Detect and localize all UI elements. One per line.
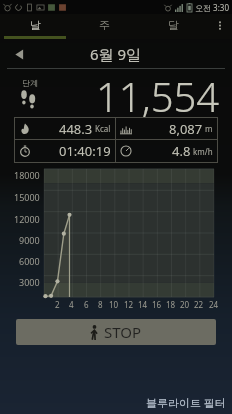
button[interactable]: 01:40:19	[15, 140, 115, 162]
staticText: STOP	[104, 322, 142, 342]
button[interactable]: Previous day	[6, 41, 32, 67]
staticText: 10	[109, 299, 119, 310]
staticText: 9000	[19, 234, 40, 246]
staticText: 11,554	[96, 69, 220, 117]
staticText: 01:40:19	[59, 142, 111, 160]
button[interactable]: 날	[0, 14, 70, 36]
staticText: 6	[84, 299, 89, 310]
staticText: 18	[166, 299, 176, 310]
staticText: Kcal	[95, 123, 111, 134]
staticText: 3000	[19, 276, 40, 288]
staticText: 24	[209, 299, 219, 310]
staticText: 블루라이트 필터	[146, 395, 226, 410]
staticText: 16	[152, 299, 162, 310]
button[interactable]: STOP	[16, 319, 216, 345]
staticText: 4.8	[172, 142, 191, 160]
staticText: 2	[55, 299, 60, 310]
staticText: 단계	[22, 78, 38, 88]
staticText: 주	[99, 18, 110, 32]
staticText: 12000	[14, 213, 40, 225]
staticText: 12	[124, 299, 134, 310]
staticText: 22	[194, 299, 204, 310]
staticText: 날	[30, 18, 41, 32]
button[interactable]: 4.8	[116, 140, 217, 162]
button[interactable]: 주	[70, 14, 139, 36]
staticText: 20	[180, 299, 190, 310]
staticText: m	[205, 123, 213, 134]
staticText: 4	[69, 299, 74, 310]
staticText: km/h	[193, 146, 213, 157]
staticText: 8,087	[169, 120, 203, 138]
staticText: 18000	[14, 169, 40, 181]
staticText: 14	[138, 299, 148, 310]
staticText: 8	[98, 299, 103, 310]
staticText: 6000	[19, 255, 40, 267]
button[interactable]: More options	[208, 14, 232, 36]
staticText: 달	[168, 18, 179, 32]
button[interactable]: 달	[139, 14, 208, 36]
button[interactable]: 448.3	[15, 118, 115, 139]
staticText: 오전 3:30	[195, 2, 229, 13]
staticText: 6월 9일	[90, 44, 142, 64]
staticText: 448.3	[59, 120, 93, 138]
staticText: 15000	[14, 191, 40, 203]
button[interactable]: 8,087	[116, 118, 217, 139]
